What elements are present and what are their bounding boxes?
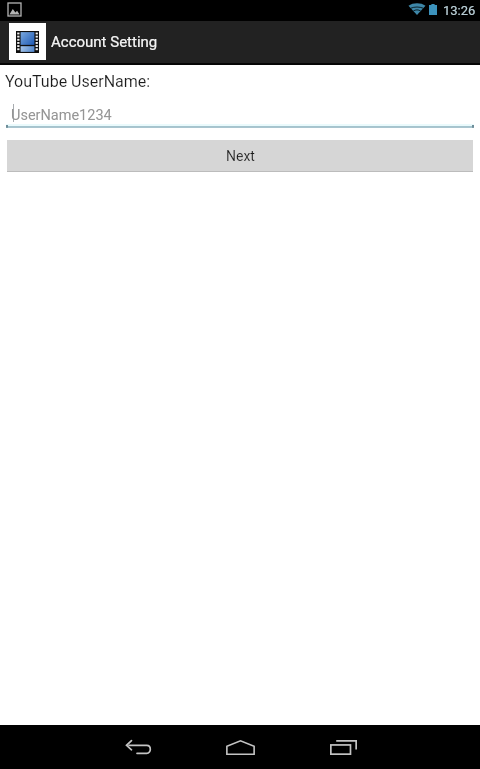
button[interactable]: Home	[189, 725, 291, 769]
button[interactable]: Recent apps	[292, 725, 394, 769]
staticText: 13:26	[443, 3, 476, 18]
button[interactable]: Back	[87, 725, 189, 769]
staticText: Account Setting	[51, 33, 158, 51]
button[interactable]: Next	[7, 140, 473, 172]
staticText: UserName1234	[11, 107, 112, 124]
button[interactable]: YouTube UserName input	[6, 99, 474, 127]
staticText: Next	[226, 148, 255, 164]
staticText: YouTube UserName:	[5, 72, 151, 91]
